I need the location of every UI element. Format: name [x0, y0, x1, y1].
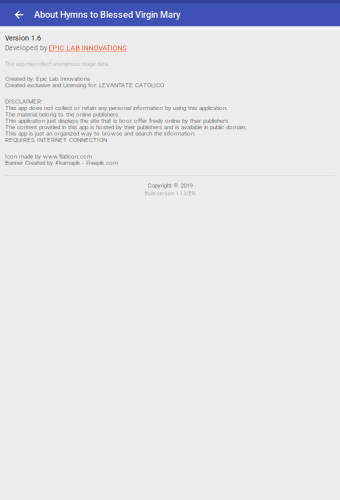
staticText: Created exclusive and Licensing for: LEV… — [5, 81, 164, 89]
button[interactable]: EPIC LAB INNOVATIONS — [48, 44, 126, 52]
staticText: Developed by — [5, 44, 47, 52]
staticText: This app is just an organized way to bro… — [5, 130, 196, 137]
staticText: Version 1.6 — [5, 34, 41, 42]
staticText: REQUIRES INTERNET CONNECTION — [5, 136, 107, 143]
staticText: DISCLAIMER: — [5, 98, 42, 105]
staticText: Created by: Epic Lab Innovations — [5, 75, 90, 82]
staticText: The content provided in this app is host… — [5, 123, 247, 131]
staticText: EPIC LAB INNOVATIONS — [48, 44, 126, 52]
staticText: Icon made by www.flaticon.com — [5, 153, 92, 160]
staticText: Copyright © 2019 — [147, 182, 192, 189]
staticText: This app does not collect or retain any … — [5, 104, 228, 111]
staticText: The material belong to the online publis… — [5, 111, 120, 118]
staticText: About Hymns to Blessed Virgin Mary — [34, 9, 180, 20]
staticText: Banner Created by #kamapik - Freepik.com — [5, 159, 118, 166]
staticText: Build version 1.1.3/EN — [144, 190, 195, 196]
staticText: This application just displays the site … — [5, 117, 230, 124]
button[interactable]: Back — [7, 3, 31, 26]
staticText: This app may collect anonymous usage dat… — [5, 61, 109, 67]
